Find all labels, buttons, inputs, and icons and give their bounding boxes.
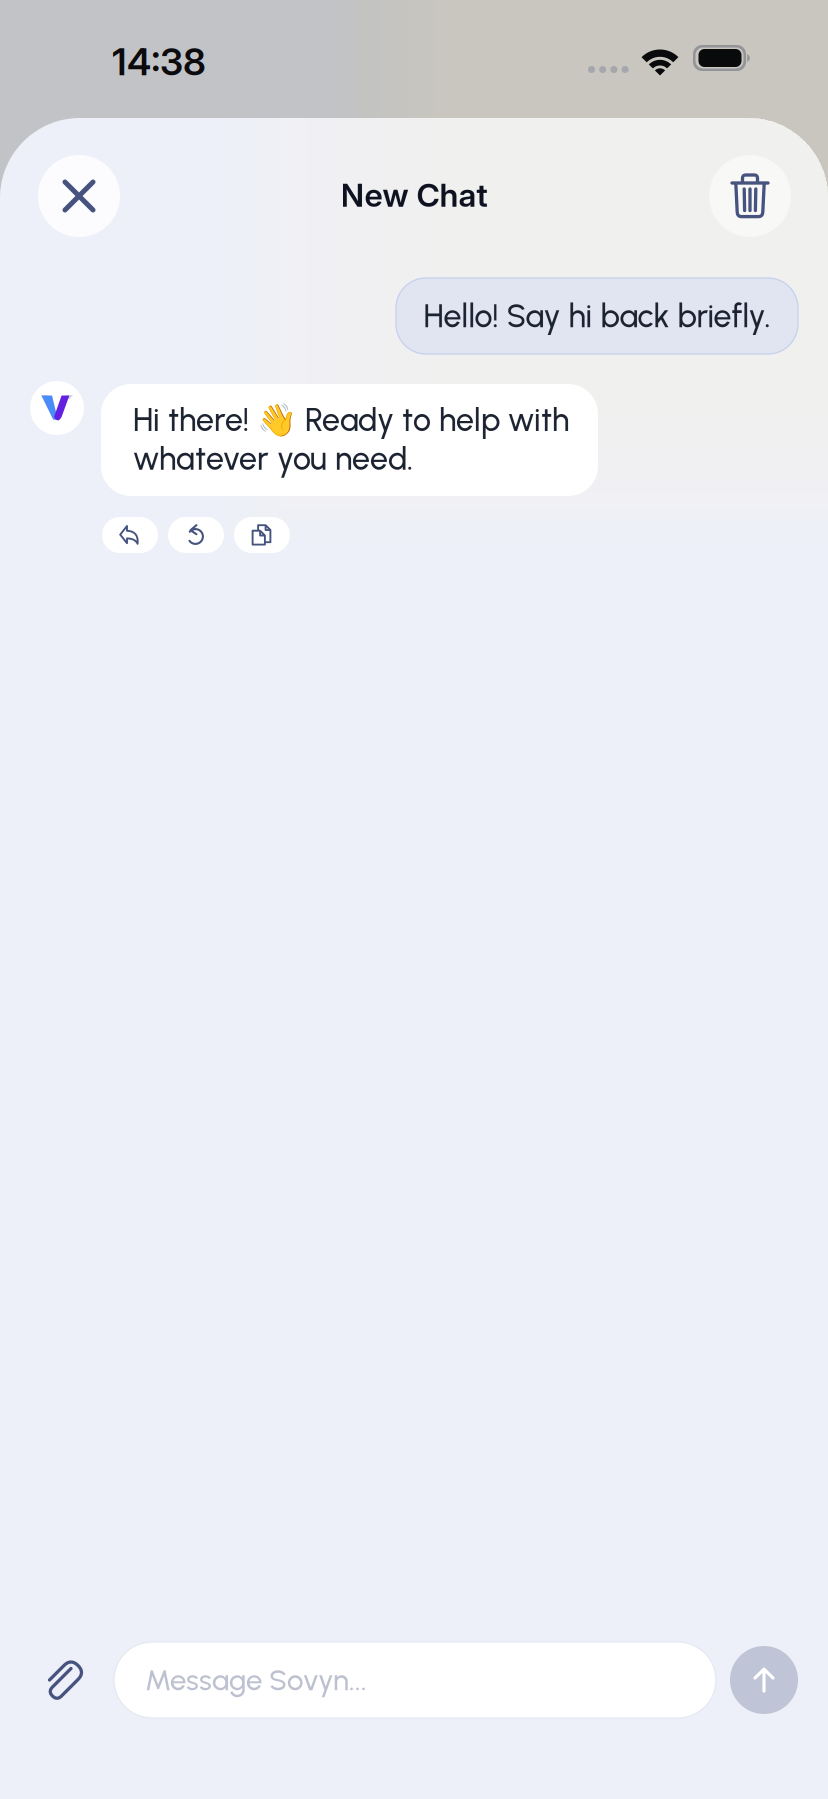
button[interactable]: Delete chat bbox=[709, 155, 791, 237]
staticText: Message Sovyn... bbox=[145, 1662, 367, 1698]
staticText: 14:38 bbox=[112, 39, 206, 84]
button[interactable]: Copy bbox=[234, 517, 290, 553]
staticText: Hi there! 👋 Ready to help with bbox=[133, 400, 569, 439]
button[interactable]: Attach file bbox=[41, 1657, 87, 1703]
button[interactable]: Regenerate bbox=[168, 517, 224, 553]
staticText: whatever you need. bbox=[133, 439, 413, 478]
button[interactable]: Message Sovyn... bbox=[114, 1642, 716, 1718]
staticText: Hello! Say hi back briefly. bbox=[423, 297, 770, 335]
button[interactable]: Close bbox=[38, 155, 120, 237]
button[interactable]: Reply bbox=[102, 517, 158, 553]
button[interactable]: Send bbox=[730, 1646, 798, 1714]
staticText: New Chat bbox=[340, 176, 487, 214]
